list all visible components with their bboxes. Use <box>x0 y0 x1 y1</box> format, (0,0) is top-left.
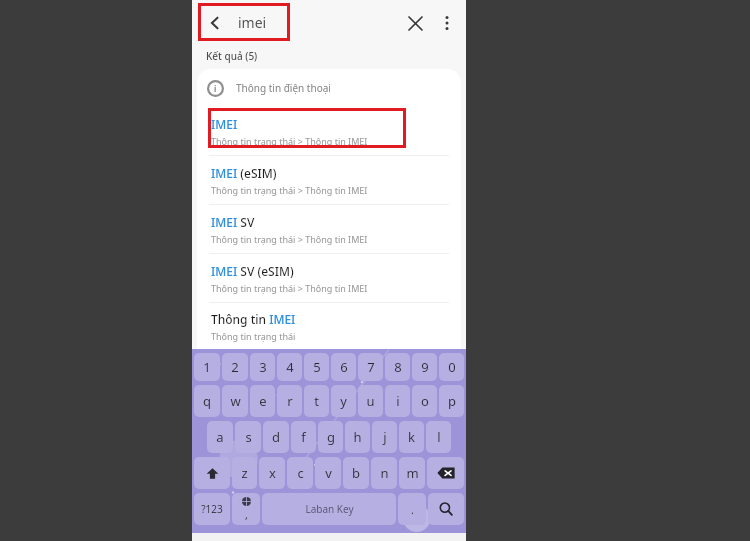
button[interactable]: ?123 <box>194 493 230 525</box>
staticText: i <box>396 392 400 410</box>
staticText: imei <box>238 13 267 32</box>
staticText: Kết quả (5) <box>206 49 258 63</box>
staticText: ?123 <box>201 502 223 516</box>
button[interactable]: 9 <box>412 353 437 381</box>
button[interactable]: c <box>287 457 313 489</box>
button[interactable]: o <box>412 385 437 417</box>
button[interactable]: e <box>250 385 275 417</box>
staticText: c <box>297 464 304 482</box>
button[interactable]: l <box>426 421 451 453</box>
button[interactable]: t <box>304 385 329 417</box>
button[interactable]: IMEI <box>197 107 461 155</box>
button[interactable]: x <box>259 457 285 489</box>
staticText: n <box>380 464 389 482</box>
staticText: Thông tin trạng thái <box>211 330 296 342</box>
staticText: 9 <box>421 358 429 376</box>
button[interactable]: Search <box>428 493 464 525</box>
button[interactable]: 7 <box>358 353 383 381</box>
staticText: IMEI (eSIM) <box>211 165 277 181</box>
button[interactable]: j <box>372 421 397 453</box>
staticText: m <box>406 464 419 482</box>
button[interactable]: w <box>222 385 248 417</box>
staticText: Thông tin trạng thái > Thông tin IMEI <box>211 135 368 147</box>
staticText: IMEI <box>211 116 238 132</box>
button[interactable]: y <box>331 385 356 417</box>
button[interactable]: Thông tin IMEI <box>197 303 461 349</box>
button[interactable]: Comma <box>232 493 260 525</box>
staticText: s <box>245 428 252 446</box>
button[interactable]: v <box>315 457 341 489</box>
button[interactable]: 4 <box>277 353 302 381</box>
button[interactable]: 5 <box>304 353 329 381</box>
button[interactable]: a <box>207 421 233 453</box>
staticText: u <box>366 392 375 410</box>
button[interactable]: Back <box>202 10 228 36</box>
button[interactable]: i <box>385 385 410 417</box>
button[interactable]: 2 <box>222 353 248 381</box>
staticText: 2 <box>231 358 239 376</box>
staticText: 7 <box>367 358 375 376</box>
button[interactable]: . <box>398 493 426 525</box>
button[interactable]: n <box>371 457 397 489</box>
button[interactable]: k <box>399 421 424 453</box>
staticText: 8 <box>394 358 402 376</box>
staticText: 3 <box>259 358 267 376</box>
button[interactable]: IMEI (eSIM) <box>197 156 461 204</box>
staticText: Thông tin IMEI <box>211 311 296 327</box>
staticText: z <box>241 464 248 482</box>
button[interactable]: b <box>343 457 369 489</box>
staticText: v <box>325 464 332 482</box>
staticText: IMEI SV <box>211 214 255 230</box>
button[interactable]: g <box>318 421 343 453</box>
button[interactable]: More options <box>432 8 462 38</box>
staticText: q <box>203 392 211 410</box>
button[interactable]: d <box>263 421 289 453</box>
staticText: w <box>230 392 241 410</box>
staticText: a <box>216 428 224 446</box>
staticText: f <box>301 428 306 446</box>
staticText: , <box>245 507 248 522</box>
button[interactable]: Backspace <box>427 457 464 489</box>
button[interactable]: 8 <box>385 353 410 381</box>
button[interactable]: s <box>235 421 261 453</box>
staticText: 4 <box>286 358 294 376</box>
staticText: t <box>314 392 319 410</box>
staticText: k <box>408 428 415 446</box>
button[interactable]: u <box>358 385 383 417</box>
button[interactable]: 6 <box>331 353 356 381</box>
button[interactable]: 1 <box>194 353 220 381</box>
staticText: Laban Key <box>305 502 354 516</box>
staticText: x <box>269 464 276 482</box>
staticText: Thông tin trạng thái > Thông tin IMEI <box>211 233 368 245</box>
staticText: b <box>352 464 360 482</box>
button[interactable]: h <box>345 421 370 453</box>
button[interactable]: 3 <box>250 353 275 381</box>
staticText: j <box>383 428 387 446</box>
staticText: o <box>421 392 429 410</box>
button[interactable]: Laban Key <box>262 493 396 525</box>
button[interactable]: 0 <box>439 353 464 381</box>
button[interactable]: m <box>399 457 425 489</box>
staticText: h <box>353 428 362 446</box>
staticText: . <box>411 502 414 517</box>
button[interactable]: p <box>439 385 464 417</box>
staticText: y <box>340 392 347 410</box>
staticText: 6 <box>340 358 348 376</box>
staticText: IMEI SV (eSIM) <box>211 263 294 279</box>
staticText: d <box>272 428 280 446</box>
button[interactable]: z <box>232 457 257 489</box>
staticText: r <box>287 392 293 410</box>
staticText: Thông tin trạng thái > Thông tin IMEI <box>211 282 368 294</box>
button[interactable]: f <box>291 421 316 453</box>
staticText: 1 <box>203 358 211 376</box>
button[interactable]: Clear <box>398 6 432 40</box>
button[interactable]: Shift <box>194 457 230 489</box>
staticText: 5 <box>313 358 321 376</box>
staticText: e <box>259 392 267 410</box>
staticText: Thông tin điện thoại <box>236 81 331 95</box>
button[interactable]: IMEI SV <box>197 205 461 253</box>
staticText: i <box>214 83 217 94</box>
button[interactable]: IMEI SV (eSIM) <box>197 254 461 302</box>
button[interactable]: q <box>194 385 220 417</box>
button[interactable]: r <box>277 385 302 417</box>
